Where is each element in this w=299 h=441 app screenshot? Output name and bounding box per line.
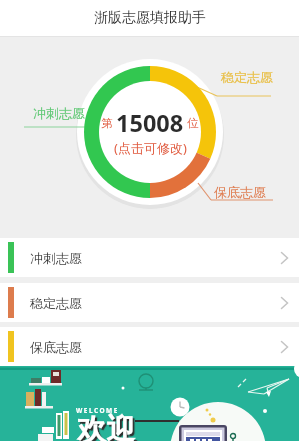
- staticText: 冲刺志愿: [30, 250, 82, 266]
- staticText: 15008: [116, 107, 184, 139]
- staticText: 稳定志愿: [221, 69, 273, 85]
- button[interactable]: 稳定志愿: [0, 283, 299, 322]
- button[interactable]: WELCOME: [0, 366, 299, 441]
- button[interactable]: 冲刺志愿: [0, 238, 299, 277]
- staticText: 保底志愿: [214, 184, 266, 200]
- staticText: 浙版志愿填报助手: [94, 9, 206, 27]
- button[interactable]: 保底志愿: [0, 327, 299, 366]
- staticText: 冲刺志愿: [33, 105, 85, 121]
- staticText: 欢迎: [77, 411, 135, 441]
- staticText: (点击可修改): [114, 139, 187, 157]
- staticText: 稳定志愿: [30, 295, 82, 311]
- button[interactable]: 第: [101, 107, 199, 157]
- staticText: WELCOME: [76, 406, 119, 415]
- staticText: 保底志愿: [30, 339, 82, 355]
- staticText: 位: [187, 116, 199, 130]
- staticText: 第: [101, 116, 113, 130]
